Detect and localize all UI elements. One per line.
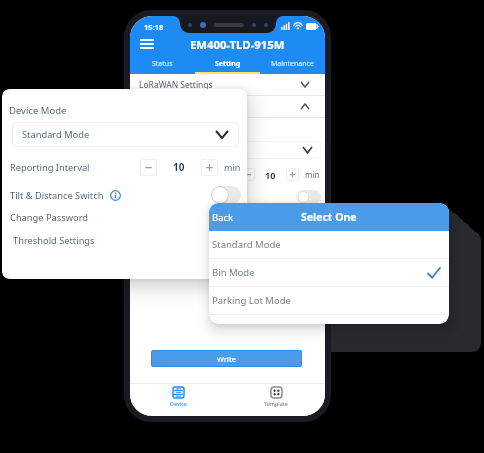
staticText: EM400-TLD-915M	[190, 37, 285, 52]
button[interactable]: Device mode	[138, 141, 321, 159]
staticText: min	[224, 161, 241, 173]
button[interactable]: Write	[151, 350, 302, 367]
staticText: Template	[264, 400, 288, 407]
staticText: Setting	[215, 59, 241, 69]
staticText: Bin Mode	[212, 266, 255, 279]
button[interactable]: Increase	[286, 168, 299, 181]
staticText: Device	[170, 400, 187, 407]
button[interactable]: Standard Mode	[12, 122, 239, 147]
staticText: Maintenance	[271, 59, 314, 69]
staticText: Threshold Settings	[13, 234, 95, 247]
button[interactable]: Setting	[195, 56, 260, 74]
button[interactable]: Template	[227, 384, 325, 416]
staticText: 10	[173, 160, 185, 174]
staticText: Device Mode	[9, 104, 67, 117]
button[interactable]: Menu	[138, 35, 156, 53]
staticText: 10	[265, 169, 276, 181]
button[interactable]	[139, 96, 309, 117]
staticText: 15:18	[144, 22, 164, 32]
button[interactable]: Parking Lot Mode	[212, 287, 440, 314]
staticText: LoRaWAN Settings	[139, 79, 213, 91]
button[interactable]: Switch	[296, 190, 321, 204]
button[interactable]: Tilt and distance switch toggle	[211, 186, 241, 204]
staticText: Tilt & Distance Switch	[10, 189, 104, 202]
staticText: Write	[217, 354, 236, 364]
button[interactable]: Increase	[201, 159, 218, 176]
staticText: Back	[212, 211, 234, 224]
button[interactable]: Maintenance	[260, 56, 325, 74]
button[interactable]: Standard Mode	[212, 231, 440, 258]
staticText: Reporting Interval	[10, 161, 90, 174]
staticText: Standard Mode	[22, 128, 90, 141]
button[interactable]: Bin Mode	[212, 259, 440, 286]
staticText: Select One	[301, 210, 357, 224]
button[interactable]: Decrease	[140, 159, 157, 176]
button[interactable]: Device	[130, 384, 227, 416]
button[interactable]: Status	[130, 56, 195, 74]
button[interactable]: Decrease	[242, 168, 255, 181]
staticText: Standard Mode	[212, 238, 281, 251]
button[interactable]: Info	[110, 190, 121, 201]
staticText: min	[305, 169, 320, 180]
staticText: Change Password	[10, 211, 89, 224]
button[interactable]: Change Password	[2, 207, 247, 227]
staticText: Status	[152, 59, 173, 69]
button[interactable]: Back	[209, 203, 241, 231]
button[interactable]: Threshold Settings	[2, 230, 247, 250]
staticText: Parking Lot Mode	[212, 294, 291, 307]
button[interactable]: LoRaWAN Settings	[139, 74, 309, 95]
